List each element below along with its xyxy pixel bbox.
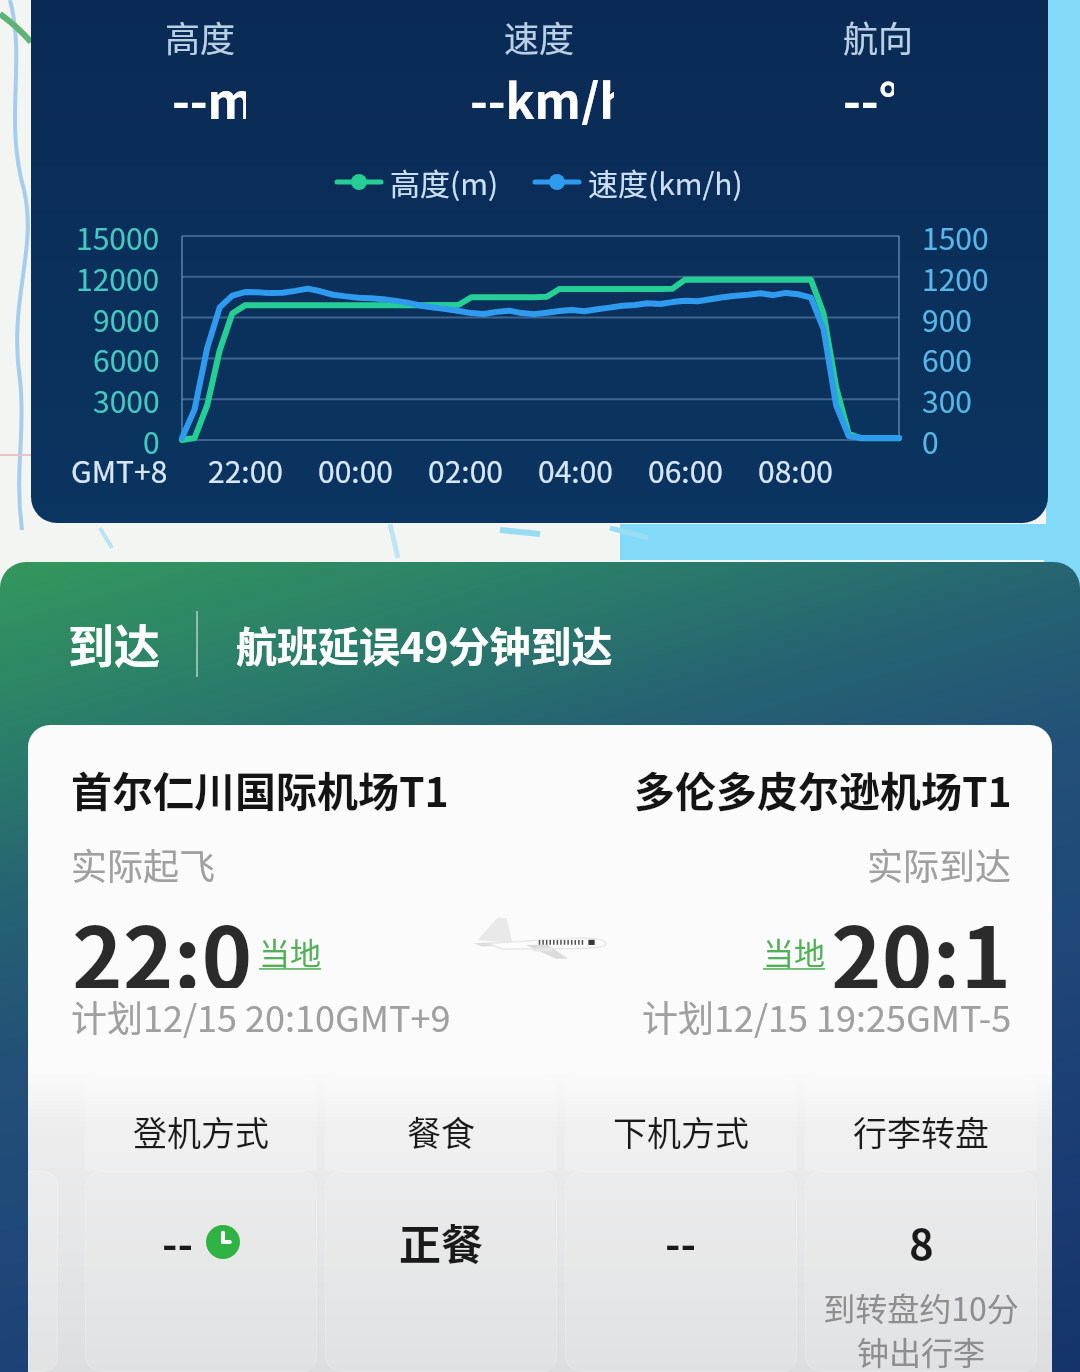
staticText: 20:1 bbox=[831, 890, 1012, 988]
staticText: 22:00 bbox=[208, 448, 283, 491]
staticText: 计划12/15 20:10GMT+9 bbox=[71, 990, 451, 1042]
staticText: 06:00 bbox=[648, 448, 723, 491]
staticText: 15000 bbox=[76, 215, 160, 258]
button[interactable]: 高度 bbox=[31, 0, 370, 134]
staticText: --m bbox=[172, 63, 246, 125]
staticText: 1200 bbox=[922, 256, 989, 299]
staticText: 高度(m) bbox=[390, 160, 499, 203]
button[interactable]: 餐食 bbox=[325, 1074, 557, 1372]
staticText: 餐食 bbox=[407, 1107, 475, 1156]
staticText: 当地 bbox=[763, 929, 825, 974]
staticText: 航向 bbox=[843, 11, 914, 62]
staticText: 下机方式 bbox=[613, 1107, 749, 1156]
staticText: 02:00 bbox=[428, 448, 503, 491]
staticText: 0 bbox=[922, 419, 939, 462]
button[interactable]: 下机方式 bbox=[565, 1074, 797, 1372]
staticText: 当地 bbox=[259, 929, 321, 974]
staticText: 正餐 bbox=[399, 1211, 484, 1272]
staticText: 航班延误49分钟到达 bbox=[236, 614, 613, 673]
staticText: 0 bbox=[143, 419, 160, 462]
button[interactable]: 登机方式 bbox=[85, 1074, 317, 1372]
staticText: 高度 bbox=[165, 11, 236, 62]
staticText: 到转盘约10分 钟出行李 bbox=[823, 1284, 1019, 1372]
button[interactable]: 行李转盘 bbox=[805, 1074, 1037, 1372]
staticText: 00:00 bbox=[318, 448, 393, 491]
staticText: -- bbox=[665, 1211, 697, 1272]
staticText: GMT+8 bbox=[71, 448, 168, 491]
staticText: 实际到达 bbox=[867, 838, 1012, 890]
staticText: 行李转盘 bbox=[853, 1107, 989, 1156]
staticText: --km/h bbox=[470, 63, 614, 125]
staticText: 08:00 bbox=[758, 448, 833, 491]
staticText: 04:00 bbox=[538, 448, 613, 491]
staticText: 多伦多皮尔逊机场T1 bbox=[634, 759, 1012, 818]
staticText: 实际起飞 bbox=[71, 838, 216, 890]
staticText: --° bbox=[843, 63, 894, 125]
staticText: 600 bbox=[922, 337, 972, 380]
staticText: 12000 bbox=[76, 256, 160, 299]
staticText: 速度(km/h) bbox=[588, 160, 743, 203]
staticText: 9000 bbox=[93, 297, 160, 340]
button[interactable]: 速度 bbox=[370, 0, 709, 134]
staticText: -- bbox=[162, 1211, 194, 1272]
button[interactable]: 航向 bbox=[709, 0, 1048, 134]
staticText: 6000 bbox=[93, 337, 160, 380]
staticText: 3000 bbox=[93, 378, 160, 421]
staticText: 900 bbox=[922, 297, 972, 340]
staticText: 1500 bbox=[922, 215, 989, 258]
staticText: 300 bbox=[922, 378, 972, 421]
staticText: 速度 bbox=[504, 11, 575, 62]
staticText: 到达 bbox=[68, 610, 160, 677]
other: Pending bbox=[206, 1225, 240, 1259]
staticText: 首尔仁川国际机场T1 bbox=[71, 759, 449, 818]
staticText: 8 bbox=[909, 1211, 934, 1272]
staticText: 计划12/15 19:25GMT-5 bbox=[642, 990, 1012, 1042]
staticText: 登机方式 bbox=[133, 1107, 269, 1156]
staticText: 22:0 bbox=[72, 890, 253, 988]
